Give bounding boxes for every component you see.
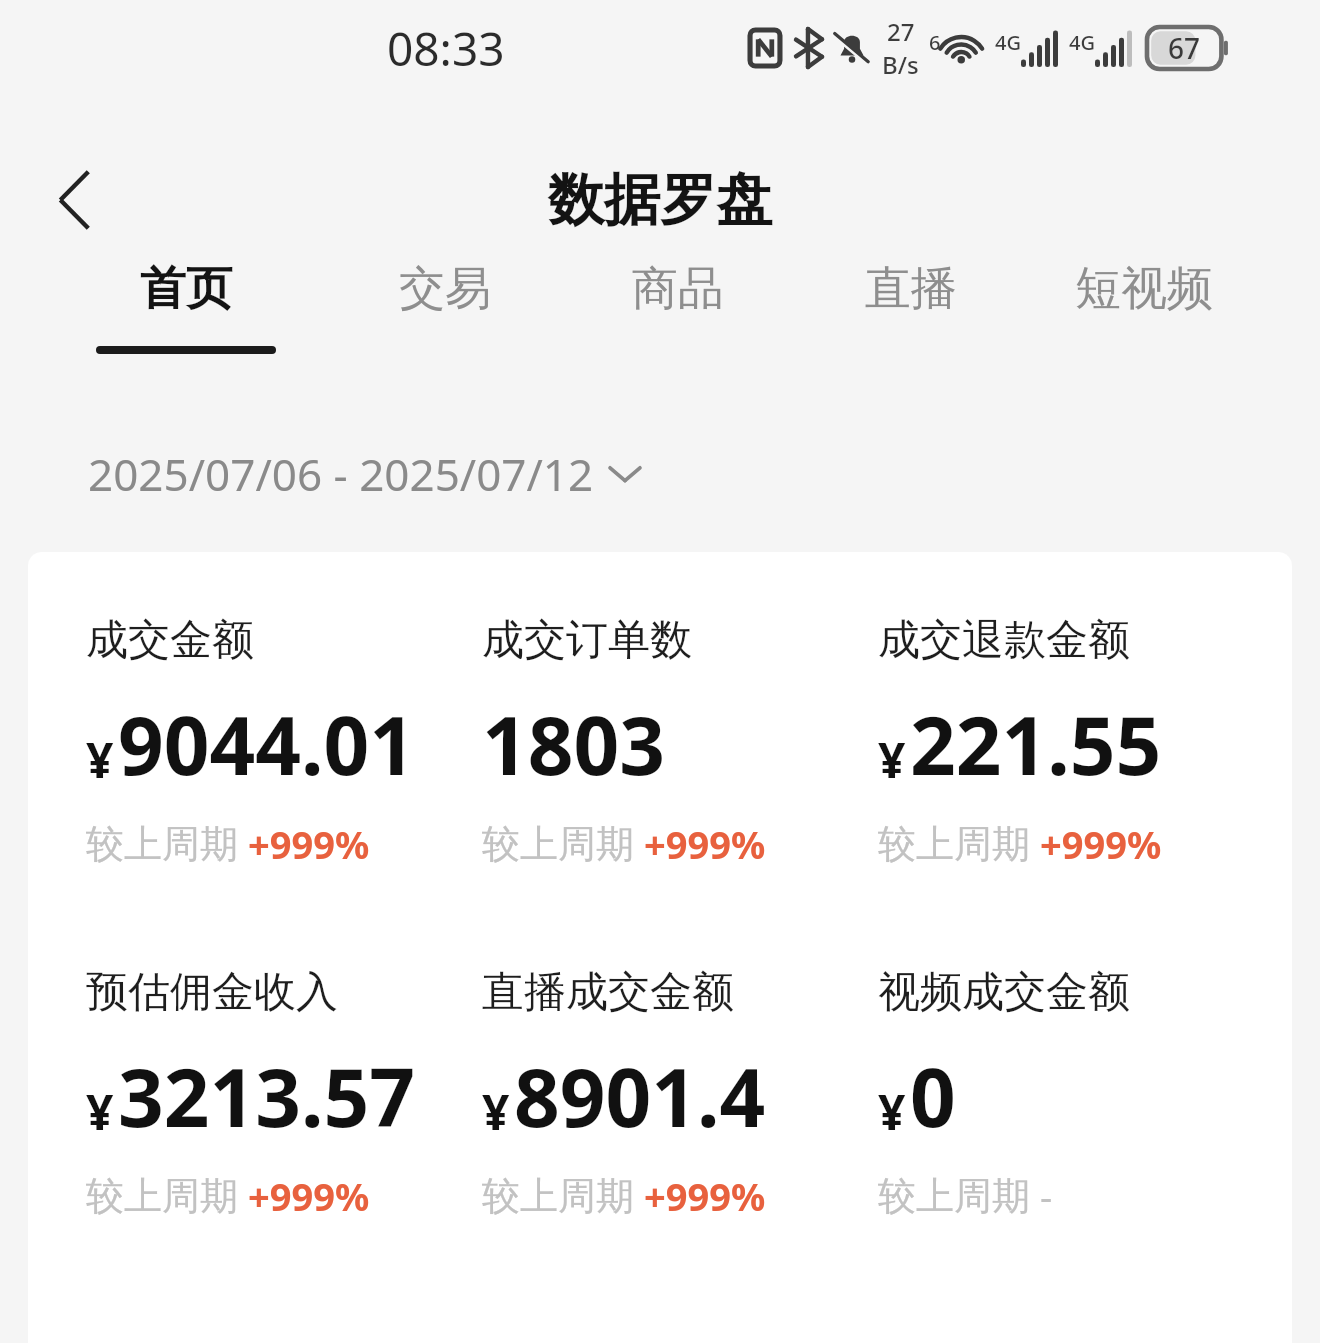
button[interactable]: 首页 (96, 260, 328, 400)
button[interactable]: 成交退款金额 (878, 614, 1274, 870)
staticText: 较上周期 (482, 1172, 634, 1220)
staticText: ¥ (878, 727, 906, 792)
staticText: 成交退款金额 (878, 614, 1130, 667)
staticText: 直播成交金额 (482, 966, 734, 1019)
staticText: 直播 (865, 260, 957, 318)
staticText: 短视频 (1075, 260, 1213, 318)
staticText: +999% (248, 1170, 370, 1222)
staticText: 数据罗盘 (548, 165, 772, 236)
staticText: 1803 (482, 689, 666, 798)
staticText: ¥ (86, 727, 114, 792)
staticText: +999% (248, 818, 370, 870)
staticText: B/s (882, 48, 919, 81)
staticText: ¥ (878, 1079, 906, 1144)
staticText: 预估佣金收入 (86, 966, 338, 1019)
staticText: 成交订单数 (482, 614, 692, 667)
staticText: - (1040, 1170, 1053, 1222)
staticText: 成交金额 (86, 614, 254, 667)
staticText: 6 (929, 29, 941, 56)
staticText: 较上周期 (878, 820, 1030, 868)
button[interactable]: 商品 (561, 260, 794, 400)
staticText: +999% (1040, 818, 1162, 870)
staticText: +999% (644, 1170, 766, 1222)
staticText: 视频成交金额 (878, 966, 1130, 1019)
staticText: ¥ (86, 1079, 114, 1144)
staticText: 商品 (632, 260, 724, 318)
staticText: 4G (1069, 29, 1095, 56)
staticText: 较上周期 (878, 1172, 1030, 1220)
staticText: 0 (910, 1041, 956, 1150)
staticText: ¥ (482, 1079, 510, 1144)
button[interactable]: 视频成交金额 (878, 966, 1274, 1222)
button[interactable]: 预估佣金收入 (86, 966, 482, 1222)
button[interactable]: 2025/07/06 - 2025/07/12 (88, 444, 642, 504)
staticText: +999% (644, 818, 766, 870)
staticText: 较上周期 (482, 820, 634, 868)
staticText: 67 (1168, 29, 1201, 67)
staticText: 08:33 (387, 17, 505, 80)
button[interactable]: 交易 (328, 260, 561, 400)
staticText: 2025/07/06 - 2025/07/12 (88, 444, 594, 504)
staticText: 221.55 (910, 689, 1162, 798)
button[interactable]: 直播成交金额 (482, 966, 878, 1222)
staticText: 首页 (140, 260, 232, 318)
staticText: 较上周期 (86, 1172, 238, 1220)
button[interactable]: 成交订单数 (482, 614, 878, 870)
button[interactable]: Back (26, 152, 122, 248)
staticText: 8901.4 (514, 1041, 766, 1150)
button[interactable]: 短视频 (1027, 260, 1260, 400)
staticText: 较上周期 (86, 820, 238, 868)
staticText: 27 (887, 15, 915, 48)
button[interactable]: 直播 (794, 260, 1027, 400)
button[interactable]: 成交金额 (86, 614, 482, 870)
staticText: 交易 (399, 260, 491, 318)
staticText: 3213.57 (118, 1041, 416, 1150)
staticText: 4G (995, 29, 1021, 56)
staticText: 9044.01 (118, 689, 416, 798)
